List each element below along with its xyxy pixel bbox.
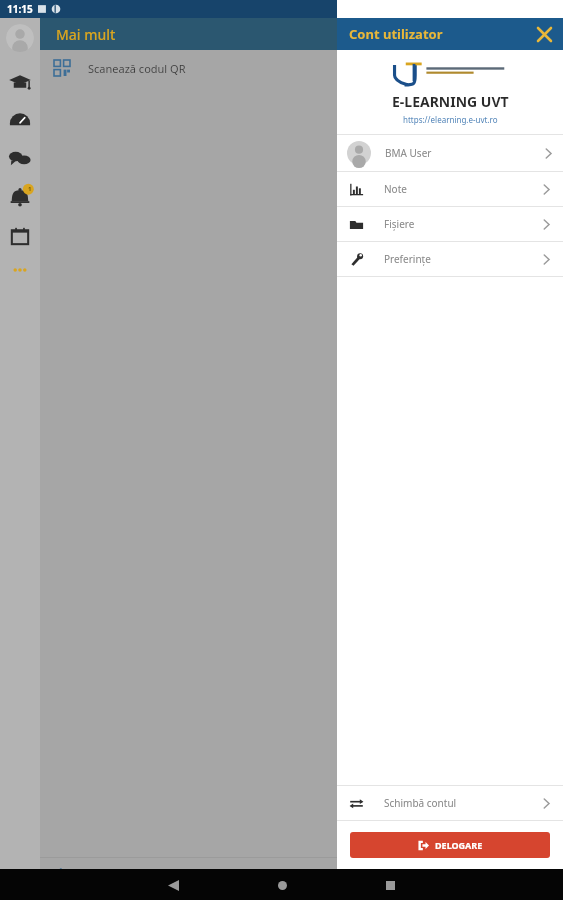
button[interactable]: Back <box>158 870 188 900</box>
button[interactable]: DELOGARE <box>350 832 550 858</box>
button[interactable]: Messages <box>8 146 32 170</box>
button[interactable]: More <box>8 262 32 278</box>
button[interactable]: Fișiere <box>337 207 563 241</box>
button[interactable]: Close <box>533 23 555 45</box>
staticText: Note <box>384 182 407 196</box>
button[interactable]: Notifications <box>7 184 33 210</box>
staticText: Schimbă contul <box>384 796 457 810</box>
button[interactable]: Schimbă contul <box>337 786 563 820</box>
button[interactable]: Scanează codul QR <box>40 50 563 86</box>
staticText: Mai mult <box>56 25 116 44</box>
staticText: BMA User <box>385 146 432 160</box>
button[interactable]: BMA User <box>337 135 563 171</box>
staticText: 11:15 <box>7 2 33 16</box>
staticText: Preferințe <box>384 252 431 266</box>
staticText: 1 <box>28 185 32 193</box>
staticText: Fișiere <box>384 217 415 231</box>
staticText: https://elearning.e-uvt.ro <box>403 114 498 125</box>
staticText: E-LEARNING UVT <box>392 92 509 111</box>
button[interactable]: Note <box>337 172 563 206</box>
button[interactable]: Courses <box>8 70 32 94</box>
button[interactable]: Profile <box>6 24 34 52</box>
staticText: DELOGARE <box>435 839 483 851</box>
staticText: Cont utilizator <box>349 25 443 43</box>
staticText: Scanează codul QR <box>88 61 186 76</box>
button[interactable]: Recents <box>375 870 405 900</box>
button[interactable]: Setări aplicație <box>40 858 563 894</box>
button[interactable]: Home <box>267 870 297 900</box>
button[interactable]: Calendar <box>8 224 32 248</box>
button[interactable]: Preferințe <box>337 242 563 276</box>
button[interactable]: Dashboard <box>8 108 32 132</box>
